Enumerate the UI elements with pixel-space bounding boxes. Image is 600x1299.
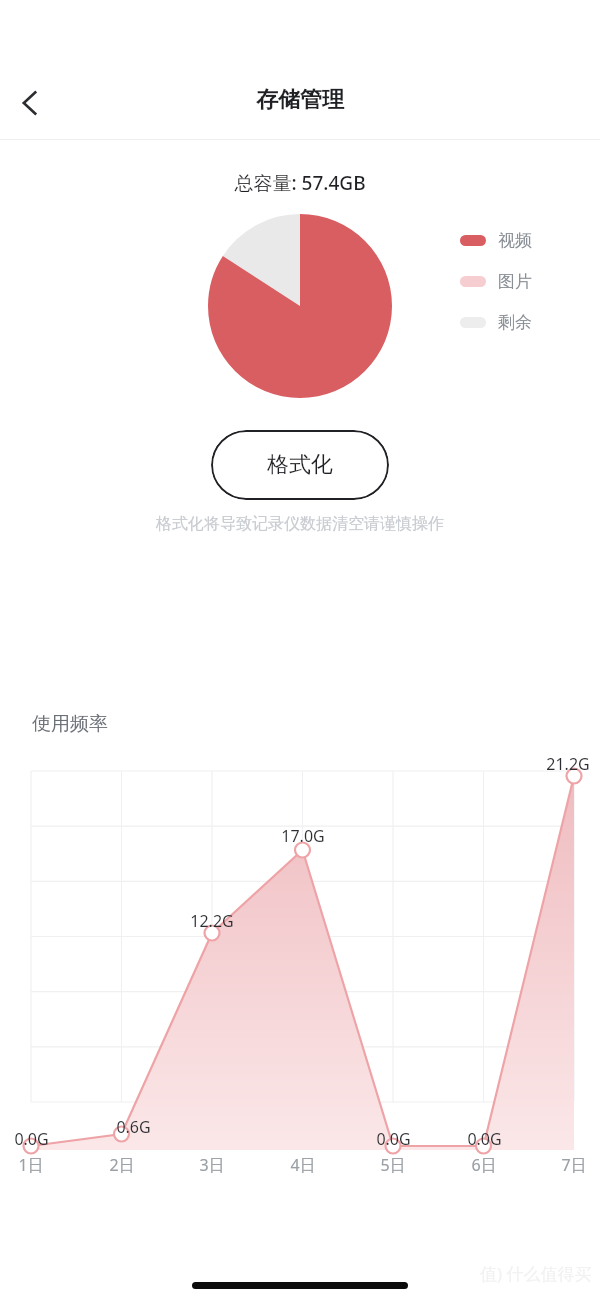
staticText: 格式化将导致记录仪数据清空请谨慎操作 [0, 514, 600, 534]
button[interactable]: Back [2, 75, 58, 131]
staticText: 12.2G [190, 910, 234, 932]
staticText: 2日 [109, 1154, 135, 1176]
staticText: 总容量: 57.4GB [0, 170, 600, 196]
staticText: 21.2G [546, 753, 590, 775]
staticText: 17.0G [281, 825, 325, 847]
staticText: 存储管理 [256, 86, 344, 114]
staticText: 5日 [380, 1154, 406, 1176]
staticText: 0.6G [116, 1116, 151, 1138]
staticText: 0.0G [467, 1128, 502, 1150]
staticText: 0.0G [14, 1128, 49, 1150]
button[interactable]: 格式化 [211, 430, 389, 500]
staticText: 使用频率 [32, 712, 108, 736]
staticText: 剩余 [498, 312, 532, 333]
staticText: 7日 [561, 1154, 587, 1176]
staticText: 3日 [199, 1154, 225, 1176]
staticText: 视频 [498, 230, 532, 251]
staticText: 0.0G [376, 1128, 411, 1150]
staticText: 1日 [18, 1154, 44, 1176]
staticText: 图片 [498, 271, 532, 292]
staticText: 6日 [471, 1154, 497, 1176]
staticText: 4日 [290, 1154, 316, 1176]
staticText: 格式化 [267, 451, 333, 479]
staticText: 值) 什么值得买 [480, 1262, 592, 1285]
